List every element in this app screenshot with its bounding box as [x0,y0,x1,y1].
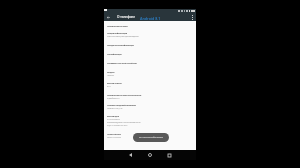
button[interactable] [104,42,196,51]
staticText: Обновление системы [107,24,128,27]
staticText: Юридическая информация [107,43,134,46]
staticText: 8.1.0 [107,85,111,88]
staticText: Nexus 5X [107,74,114,77]
staticText: android-build@wprd1.hot.corp.google.com … [107,121,141,124]
button[interactable] [104,130,196,141]
staticText: MMB29V 2.34.0_0.18 [107,107,123,110]
staticText: Номер сборки [107,132,121,135]
button[interactable]: Вы стали разработчиком! [133,133,169,142]
button[interactable] [104,21,196,30]
button[interactable] [104,67,196,79]
staticText: Модель [107,70,115,73]
button[interactable] [104,113,196,131]
staticText: Вы стали разработчиком! [139,136,163,139]
staticText: Fri Jan 12 18:30:00 UTC 2018 [107,124,128,127]
staticText: Сертификация [107,52,122,55]
button[interactable]: Back [106,15,111,20]
staticText: OPM2.171019.029 [107,136,121,139]
staticText: Отправить отзыв об устройстве [107,61,137,64]
button[interactable] [104,102,196,113]
button[interactable]: Recent apps [165,151,173,159]
button[interactable] [104,30,196,42]
button[interactable] [104,79,196,90]
button[interactable]: Home [146,151,154,159]
button[interactable] [104,90,196,102]
staticText: Android 8.1 [140,16,161,21]
staticText: Версия Android [107,81,122,84]
staticText: О телефоне [117,15,136,19]
staticText: Общая информация [107,31,127,34]
button[interactable]: Back [126,151,134,159]
staticText: 5 декабря 2017 г. [107,97,120,100]
button[interactable] [104,59,196,68]
staticText: Уровень заводской прошивки [107,103,136,106]
staticText: Обновление системы безопасности [107,93,142,96]
staticText: 3.10.73-g1e0b1e1 [107,118,121,121]
staticText: Статус SIM-карты, IMEI и другие сведения [107,35,139,38]
button[interactable]: More options [190,15,195,20]
staticText: Версия ядра [107,114,119,117]
button[interactable] [104,50,196,59]
